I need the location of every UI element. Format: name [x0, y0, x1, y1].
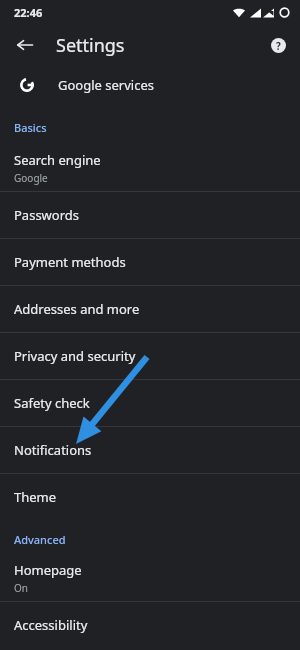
staticText: Search engine [14, 151, 101, 169]
staticText: Homepage [14, 561, 82, 579]
button[interactable]: Passwords [0, 192, 300, 238]
staticText: Google services [58, 76, 154, 94]
button[interactable]: Help [262, 29, 294, 61]
staticText: Passwords [14, 206, 80, 224]
staticText: Advanced [14, 532, 66, 547]
staticText: Google [14, 171, 48, 185]
staticText: Addresses and more [14, 300, 140, 318]
staticText: Theme [14, 488, 57, 506]
button[interactable]: Privacy and security [0, 333, 300, 379]
button[interactable]: Back [8, 28, 42, 62]
staticText: Settings [56, 33, 125, 58]
button[interactable]: Notifications [0, 427, 300, 473]
button[interactable]: Search engine [0, 145, 300, 191]
button[interactable]: Theme [0, 474, 300, 520]
button[interactable]: Google services [0, 66, 300, 104]
button[interactable]: Accessibility [0, 602, 300, 648]
staticText: Accessibility [14, 616, 88, 634]
staticText: Payment methods [14, 253, 126, 271]
staticText: Notifications [14, 441, 92, 459]
button[interactable]: Safety check [0, 380, 300, 426]
staticText: Privacy and security [14, 347, 136, 365]
button[interactable]: Payment methods [0, 239, 300, 285]
staticText: Basics [14, 120, 47, 135]
staticText: ? [276, 39, 281, 53]
staticText: Safety check [14, 394, 90, 412]
button[interactable]: Addresses and more [0, 286, 300, 332]
button[interactable]: Homepage [0, 555, 300, 601]
staticText: 22:46 [14, 5, 43, 20]
staticText: On [14, 581, 28, 595]
